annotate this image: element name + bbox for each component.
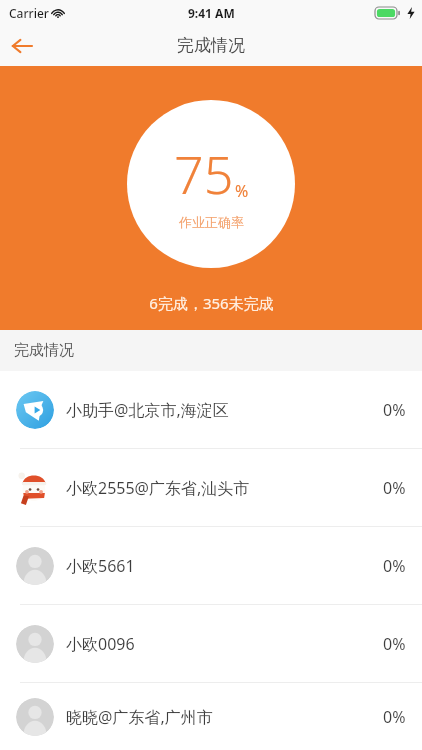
staticText: Carrier: [9, 5, 49, 21]
staticText: 小欧2555@广东省,汕头市: [66, 477, 383, 499]
staticText: 0%: [383, 706, 406, 728]
staticText: 小欧0096: [66, 633, 383, 655]
button[interactable]: 小欧5661: [0, 527, 422, 604]
staticText: 0%: [383, 399, 406, 421]
staticText: 作业正确率: [179, 214, 244, 230]
staticText: 0%: [383, 633, 406, 655]
staticText: 75: [174, 138, 234, 209]
staticText: 小欧5661: [66, 555, 383, 577]
staticText: 9:41 AM: [188, 5, 235, 21]
staticText: 小助手@北京市,海淀区: [66, 399, 383, 421]
staticText: 0%: [383, 477, 406, 499]
staticText: 0%: [383, 555, 406, 577]
staticText: 晓晓@广东省,广州市: [66, 706, 383, 728]
button[interactable]: Back: [0, 25, 44, 66]
button[interactable]: 晓晓@广东省,广州市: [0, 683, 422, 750]
button[interactable]: 小助手@北京市,海淀区: [0, 371, 422, 448]
button[interactable]: 小欧0096: [0, 605, 422, 682]
staticText: 6完成，356未完成: [149, 293, 274, 313]
staticText: %: [235, 180, 249, 202]
button[interactable]: 小欧2555@广东省,汕头市: [0, 449, 422, 526]
staticText: 完成情况: [177, 35, 245, 56]
staticText: 完成情况: [14, 341, 74, 360]
